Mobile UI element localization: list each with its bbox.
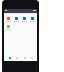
button[interactable]: App: [13, 17, 20, 22]
button[interactable]: App: [21, 17, 28, 22]
button[interactable]: App: [5, 17, 12, 22]
button[interactable]: App: [5, 25, 12, 30]
button[interactable]: Tab: [14, 55, 19, 60]
button[interactable]: App: [29, 17, 36, 22]
button[interactable]: Tab: [29, 55, 34, 60]
button[interactable]: Tab: [22, 55, 27, 60]
button[interactable]: Tab: [7, 55, 12, 60]
